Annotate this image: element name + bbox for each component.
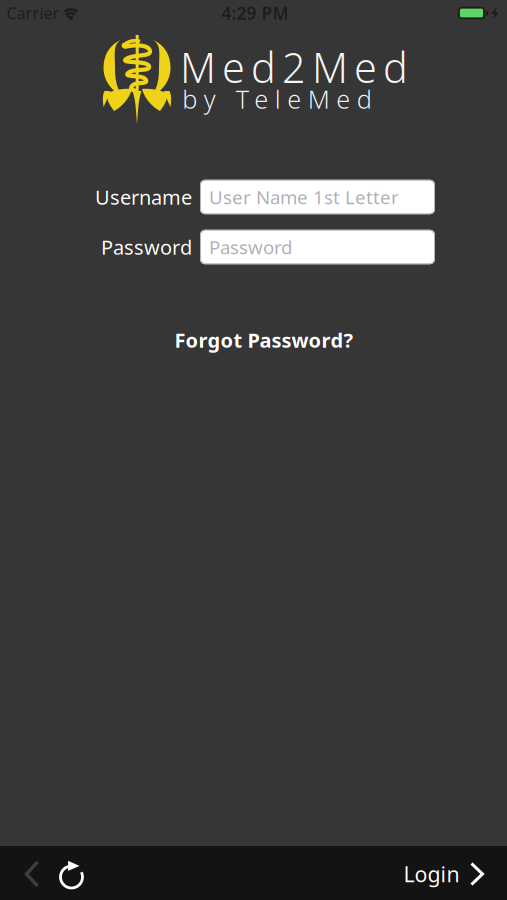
button[interactable]: User Name 1st Letter	[200, 180, 435, 214]
button[interactable]: Refresh	[58, 860, 85, 889]
staticText: Med2Med	[180, 40, 408, 94]
staticText: Carrier	[6, 2, 59, 24]
staticText: by TeleMed	[182, 82, 372, 116]
staticText: 4:29 PM	[221, 1, 288, 24]
staticText: User Name 1st Letter	[209, 185, 399, 209]
button[interactable]: Forgot Password?	[174, 327, 353, 353]
staticText: Login	[403, 860, 459, 888]
staticText: Username	[95, 184, 192, 210]
button[interactable]: Password	[200, 230, 435, 264]
staticText: Forgot Password?	[174, 327, 353, 353]
staticText: Password	[101, 234, 192, 260]
button[interactable]: Back	[25, 860, 39, 888]
button[interactable]: Login	[403, 860, 484, 888]
staticText: Password	[209, 235, 292, 259]
